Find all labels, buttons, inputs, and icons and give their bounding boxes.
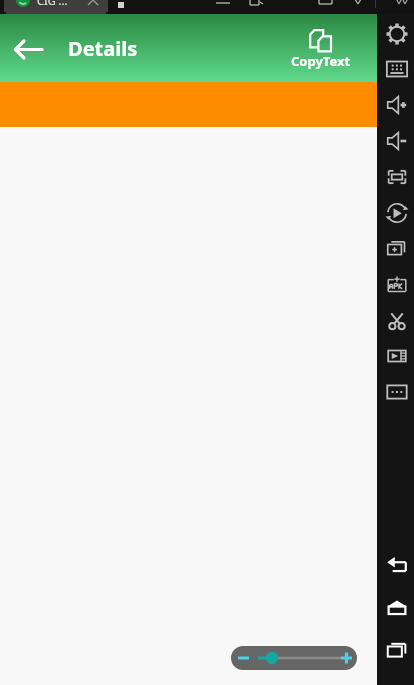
button[interactable]: Zoom control	[231, 646, 357, 670]
button[interactable]: More	[386, 381, 408, 403]
button[interactable]: Restore	[250, 0, 263, 5]
button[interactable]: Close tab	[88, 0, 98, 5]
button[interactable]: Screenshot	[386, 166, 408, 188]
button[interactable]: Home	[386, 596, 408, 618]
button[interactable]: Record video	[386, 345, 408, 367]
button[interactable]: Back	[386, 553, 408, 575]
button[interactable]: Settings	[386, 23, 408, 45]
staticText: Details	[68, 35, 138, 62]
button[interactable]: Back	[5, 29, 51, 69]
button[interactable]: Install APK	[386, 273, 408, 295]
staticText: CIG ...	[37, 0, 68, 7]
staticText: CopyText	[291, 52, 351, 70]
button[interactable]: Maximize	[319, 0, 332, 4]
button[interactable]: Volume down	[386, 130, 408, 152]
button[interactable]: Volume up	[386, 94, 408, 116]
button[interactable]: Add snapshot	[386, 237, 408, 259]
button[interactable]: Close window	[352, 0, 364, 4]
button[interactable]: CopyText	[287, 29, 354, 70]
button[interactable]	[4, 0, 108, 14]
button[interactable]: Minimize	[214, 0, 232, 4]
button[interactable]: Collapse toolbar	[394, 0, 410, 4]
button[interactable]: Snip	[386, 309, 408, 331]
button[interactable]: Record screen	[386, 202, 408, 224]
button[interactable]: Keyboard	[386, 58, 408, 80]
button[interactable]: Recents	[386, 639, 408, 661]
